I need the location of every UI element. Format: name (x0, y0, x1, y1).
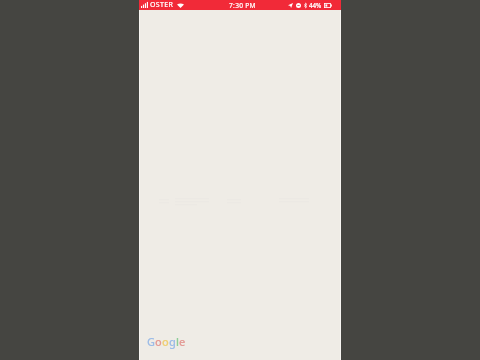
button[interactable]: Google (147, 334, 186, 349)
staticText: o (162, 334, 169, 349)
staticText: 7:30 PM (229, 1, 256, 10)
staticText: o (155, 334, 162, 349)
staticText: G (147, 334, 155, 349)
staticText: g (169, 334, 176, 349)
staticText: e (179, 334, 186, 349)
staticText: 44% (309, 1, 322, 9)
staticText: l (176, 334, 179, 349)
staticText: OSTER (150, 0, 174, 10)
